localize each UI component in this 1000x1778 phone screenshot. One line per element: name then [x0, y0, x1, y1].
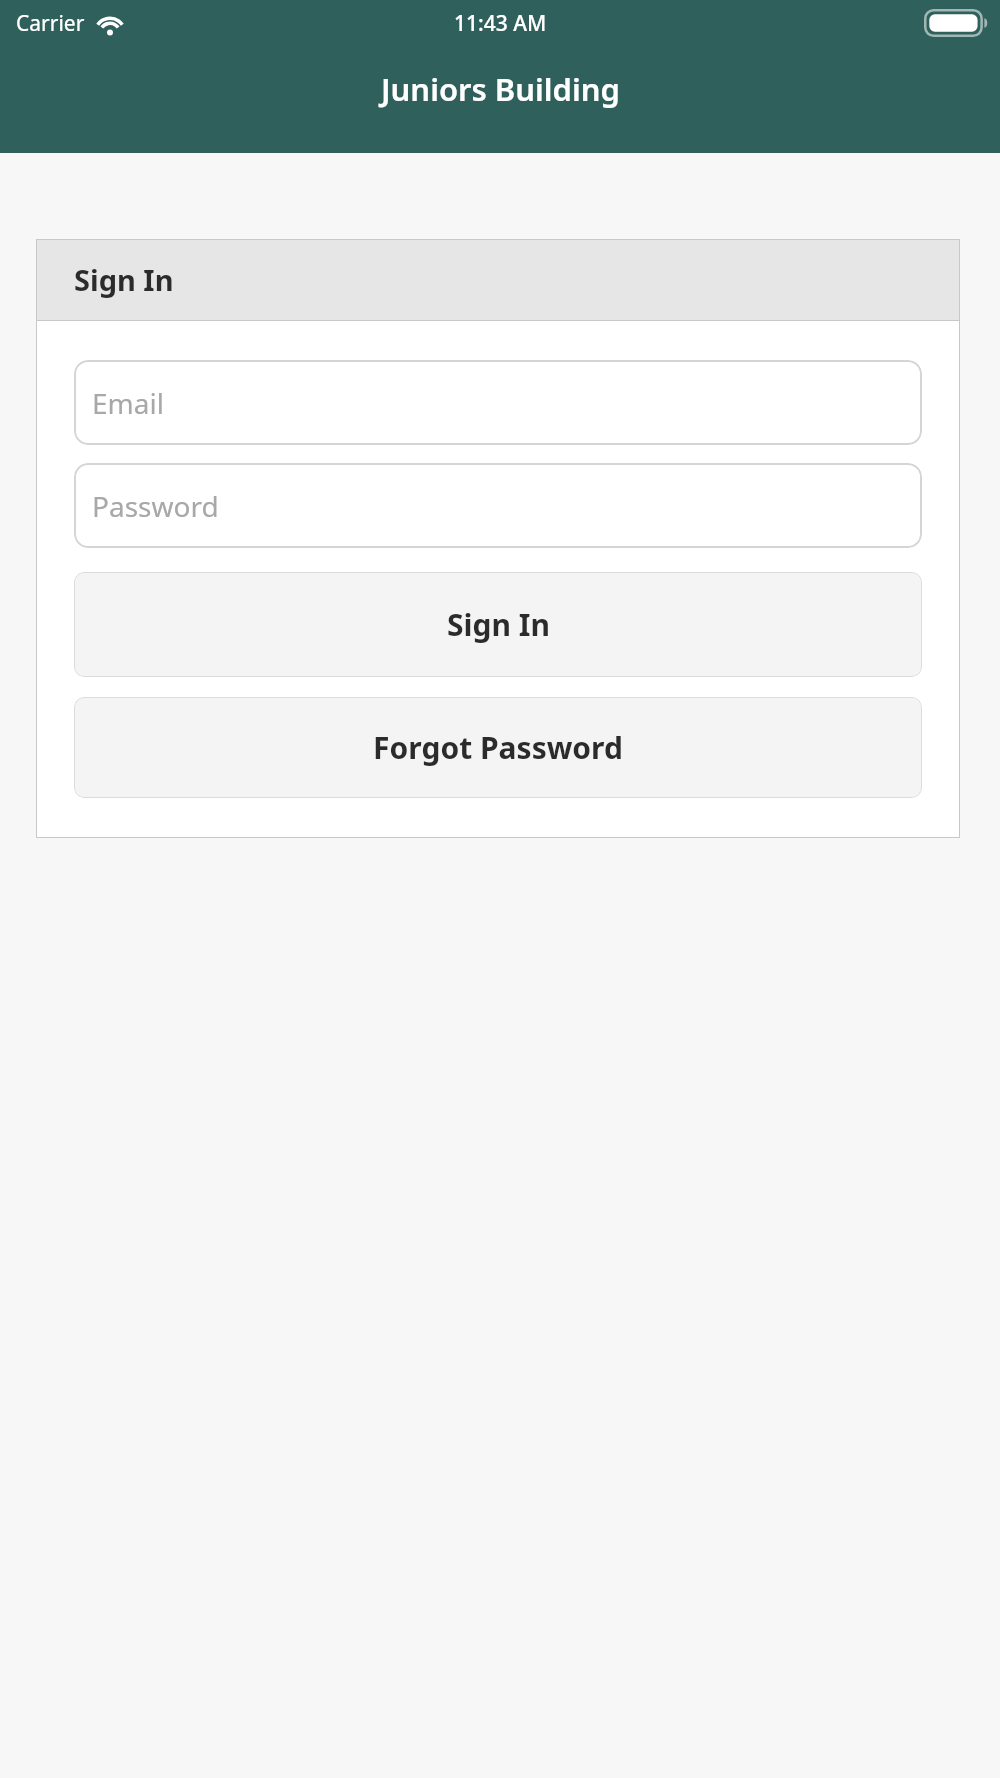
- staticText: Password: [92, 487, 219, 525]
- button[interactable]: Password: [74, 463, 922, 548]
- staticText: 11:43 AM: [454, 9, 547, 38]
- staticText: Carrier: [16, 9, 85, 38]
- button[interactable]: Email: [74, 360, 922, 445]
- button[interactable]: Sign In: [74, 572, 922, 677]
- staticText: Forgot Password: [373, 727, 623, 768]
- staticText: Sign In: [74, 260, 174, 299]
- staticText: Juniors Building: [381, 68, 620, 110]
- button[interactable]: Forgot Password: [74, 697, 922, 798]
- staticText: Email: [92, 384, 164, 422]
- other: Wi-Fi: [95, 13, 125, 35]
- staticText: Sign In: [447, 604, 550, 645]
- other: Battery: [924, 9, 988, 37]
